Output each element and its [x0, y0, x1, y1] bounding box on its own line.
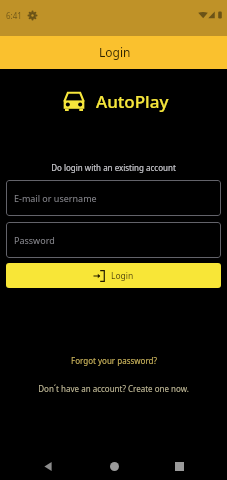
button[interactable]: Home — [96, 442, 132, 478]
button[interactable]: Password — [6, 222, 221, 258]
button[interactable]: Back — [30, 442, 66, 478]
button[interactable]: Forgot your password? — [0, 355, 227, 366]
staticText: Forgot your password? — [71, 355, 157, 366]
staticText: Login — [111, 270, 134, 282]
staticText: AutoPlay — [96, 90, 169, 113]
staticText: 6:41 — [6, 10, 22, 21]
button[interactable]: Login — [6, 263, 221, 288]
button[interactable]: Recent apps — [161, 442, 197, 478]
button[interactable]: Don´t have an account? Create one now. — [0, 383, 227, 394]
staticText: Login — [99, 44, 131, 60]
button[interactable]: E-mail or username — [6, 180, 221, 216]
staticText: Do login with an existing account — [0, 162, 227, 173]
staticText: E-mail or username — [14, 192, 97, 204]
staticText: Password — [14, 234, 55, 246]
staticText: Don´t have an account? Create one now. — [38, 383, 189, 394]
